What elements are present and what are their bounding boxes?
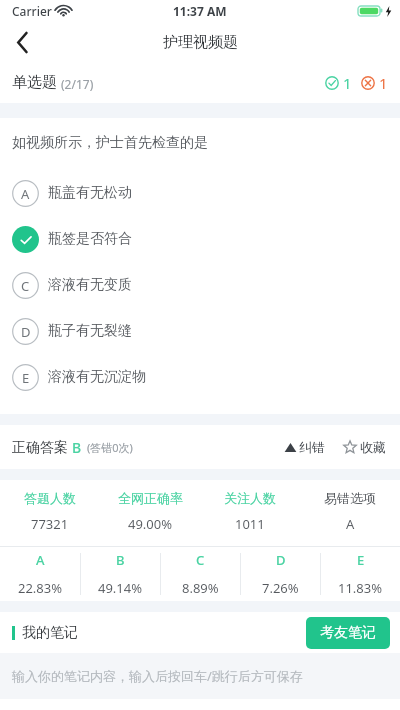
staticText: 瓶盖有无松动 xyxy=(48,184,132,202)
button[interactable]: C xyxy=(0,262,400,308)
staticText: 11.83% xyxy=(338,579,383,597)
staticText: A xyxy=(21,185,30,203)
staticText: 答题人数 xyxy=(24,490,76,506)
staticText: 瓶子有无裂缝 xyxy=(48,322,132,340)
staticText: 7.26% xyxy=(262,579,299,597)
staticText: (答错0次) xyxy=(87,440,133,455)
staticText: 22.83% xyxy=(18,579,63,597)
staticText: 我的笔记 xyxy=(22,624,78,642)
staticText: B xyxy=(72,438,82,457)
staticText: D xyxy=(276,551,286,569)
button[interactable]: 考友笔记 xyxy=(306,617,390,649)
button[interactable]: 瓶签是否符合 xyxy=(0,216,400,262)
staticText: 1 xyxy=(379,73,388,93)
staticText: A xyxy=(346,515,355,533)
staticText: 如视频所示，护士首先检查的是 xyxy=(12,134,208,152)
staticText: Carrier xyxy=(12,3,52,19)
staticText: (2/17) xyxy=(61,76,94,92)
staticText: 1 xyxy=(343,73,352,93)
staticText: 正确答案 xyxy=(12,439,68,457)
staticText: 收藏 xyxy=(360,439,386,455)
staticText: 易错选项 xyxy=(324,490,376,506)
staticText: 纠错 xyxy=(299,439,325,455)
staticText: 溶液有无变质 xyxy=(48,276,132,294)
staticText: 瓶签是否符合 xyxy=(48,230,132,248)
button[interactable]: E xyxy=(0,354,400,400)
staticText: 1011 xyxy=(235,515,265,533)
staticText: 考友笔记 xyxy=(320,624,376,642)
staticText: C xyxy=(196,551,205,569)
button[interactable]: D xyxy=(0,308,400,354)
staticText: 49.14% xyxy=(98,579,143,597)
staticText: E xyxy=(357,551,365,569)
staticText: A xyxy=(36,551,45,569)
staticText: 单选题 xyxy=(12,73,57,92)
staticText: 输入你的笔记内容，输入后按回车/跳行后方可保存 xyxy=(12,667,303,685)
staticText: C xyxy=(21,277,30,295)
button[interactable]: 收藏 xyxy=(339,435,390,459)
button[interactable]: A xyxy=(0,170,400,216)
staticText: 溶液有无沉淀物 xyxy=(48,368,146,386)
staticText: 护理视频题 xyxy=(163,33,238,52)
button[interactable]: 纠错 xyxy=(280,435,329,459)
staticText: 全网正确率 xyxy=(118,490,183,506)
staticText: D xyxy=(21,323,31,341)
staticText: 11:37 AM xyxy=(173,3,227,19)
staticText: B xyxy=(116,551,125,569)
button[interactable]: 输入你的笔记内容，输入后按回车/跳行后方可保存 xyxy=(0,653,400,699)
staticText: E xyxy=(22,369,30,387)
staticText: 关注人数 xyxy=(224,490,276,506)
staticText: 8.89% xyxy=(182,579,219,597)
staticText: 49.00% xyxy=(128,515,173,533)
button[interactable]: Back xyxy=(0,22,44,62)
staticText: 77321 xyxy=(31,515,69,533)
